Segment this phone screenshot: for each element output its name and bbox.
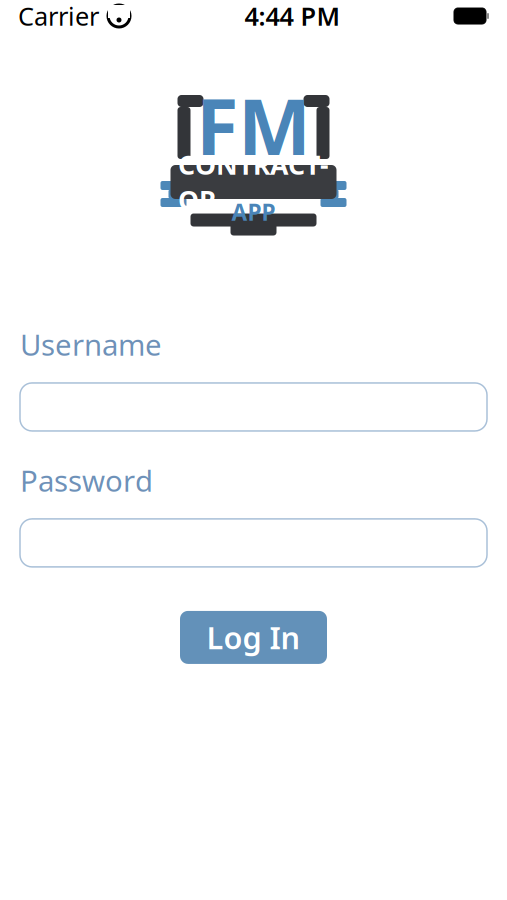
staticText: APP <box>231 197 275 227</box>
staticText: CONTRACTOR <box>178 147 329 217</box>
staticText: Username <box>20 325 162 364</box>
staticText: Carrier <box>18 0 99 33</box>
button[interactable]: Log In <box>180 611 327 664</box>
staticText: FM <box>196 74 311 176</box>
staticText: Log In <box>206 617 300 658</box>
staticText: 4:44 PM <box>244 0 340 33</box>
staticText: Password <box>20 461 153 500</box>
